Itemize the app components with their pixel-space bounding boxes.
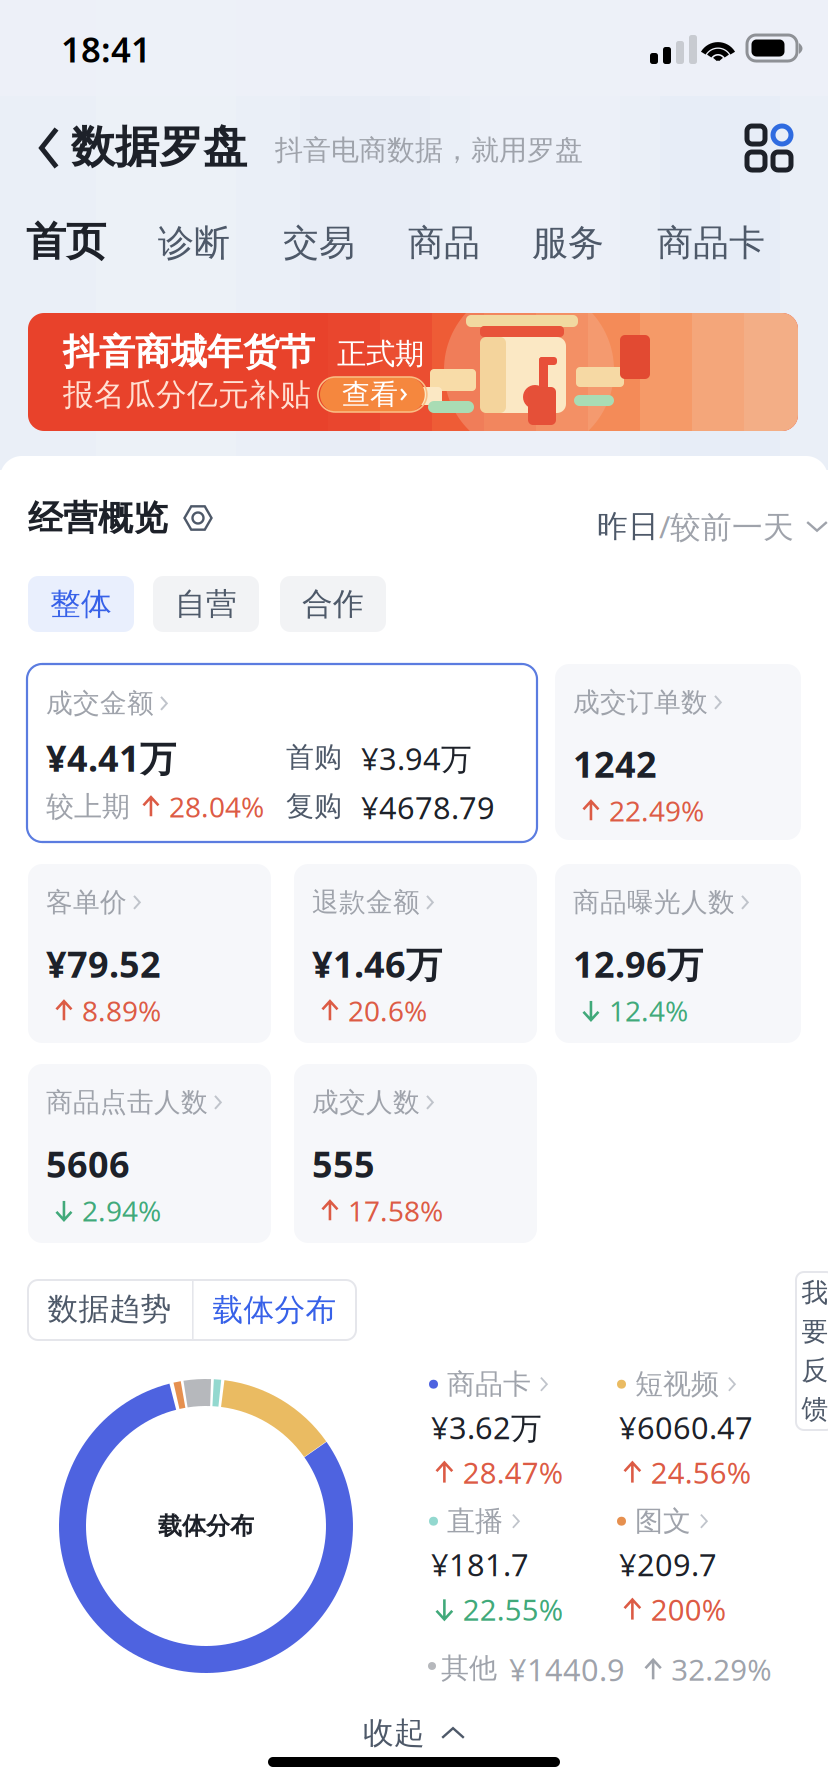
button[interactable]: 载体分布: [193, 1281, 356, 1339]
staticText: 昨日: [597, 507, 659, 545]
staticText: 12.96万: [573, 940, 703, 988]
staticText: 32.29%: [671, 1650, 771, 1689]
staticText: 载体分布: [158, 1511, 254, 1541]
button[interactable]: 诊断: [158, 207, 230, 279]
staticText: 要: [801, 1315, 828, 1348]
button[interactable]: 应用: [733, 112, 805, 184]
staticText: 查看: [342, 377, 398, 412]
button[interactable]: 成交订单数: [555, 664, 801, 840]
staticText: 合作: [302, 585, 364, 623]
button[interactable]: 首页: [26, 203, 106, 280]
staticText: 22.55%: [463, 1590, 563, 1629]
staticText: 其他: [441, 1651, 497, 1685]
staticText: 555: [312, 1140, 375, 1188]
staticText: 20.6%: [348, 992, 427, 1029]
staticText: ¥1440.9: [509, 1649, 625, 1690]
staticText: 抖音电商数据，就用罗盘: [275, 133, 583, 167]
staticText: 商品卡: [447, 1367, 531, 1401]
button[interactable]: 整体: [28, 576, 134, 632]
staticText: 退款金额: [312, 886, 420, 919]
staticText: 首购: [286, 740, 342, 774]
staticText: 诊断: [158, 221, 230, 265]
staticText: ¥4.41万: [46, 734, 176, 782]
staticText: 复购: [286, 789, 342, 823]
button[interactable]: 交易: [283, 207, 355, 279]
button[interactable]: 说明: [183, 503, 213, 533]
staticText: 直播: [447, 1504, 503, 1538]
staticText: ¥6060.47: [619, 1407, 753, 1448]
button[interactable]: 昨日: [597, 496, 828, 557]
staticText: 18:41: [61, 26, 151, 72]
staticText: 成交订单数: [573, 686, 708, 719]
button[interactable]: 成交人数: [294, 1064, 537, 1243]
staticText: 较上期: [46, 789, 130, 824]
staticText: 收起: [363, 1714, 425, 1752]
staticText: 数据趋势: [47, 1290, 171, 1328]
button[interactable]: 商品卡: [657, 207, 765, 279]
staticText: 200%: [651, 1590, 726, 1629]
button[interactable]: 客单价: [28, 864, 271, 1043]
staticText: 服务: [532, 221, 604, 265]
staticText: 成交金额: [46, 687, 154, 720]
button[interactable]: 图文: [615, 1504, 801, 1630]
staticText: 商品曝光人数: [573, 886, 735, 919]
staticText: 22.49%: [609, 792, 704, 829]
button[interactable]: 直播: [427, 1504, 613, 1630]
staticText: 首页: [26, 217, 106, 266]
staticText: 经营概览: [28, 497, 168, 540]
button[interactable]: 数据趋势: [28, 1280, 191, 1338]
button[interactable]: 商品曝光人数: [555, 864, 801, 1043]
staticText: ¥4678.79: [361, 787, 495, 828]
button[interactable]: 我: [796, 1272, 828, 1430]
staticText: 8.89%: [82, 992, 161, 1029]
staticText: 12.4%: [609, 992, 688, 1029]
staticText: 馈: [801, 1393, 828, 1426]
staticText: 成交人数: [312, 1086, 420, 1119]
button[interactable]: 收起: [264, 1700, 564, 1766]
button[interactable]: 短视频: [615, 1367, 801, 1493]
staticText: 数据罗盘: [71, 120, 247, 174]
button[interactable]: 服务: [532, 207, 604, 279]
staticText: 5606: [46, 1140, 130, 1188]
staticText: 载体分布: [212, 1291, 336, 1329]
staticText: 17.58%: [348, 1192, 443, 1229]
staticText: 客单价: [46, 886, 127, 919]
staticText: ¥79.52: [46, 940, 161, 988]
staticText: 商品: [408, 221, 480, 265]
button[interactable]: 其他: [428, 1644, 768, 1688]
button[interactable]: 抖音商城年货节: [28, 313, 798, 431]
button[interactable]: 自营: [153, 576, 259, 632]
staticText: 商品点击人数: [46, 1086, 208, 1119]
staticText: /较前一天: [659, 506, 794, 547]
staticText: 交易: [283, 221, 355, 265]
staticText: 28.04%: [169, 788, 264, 825]
button[interactable]: 返回: [18, 112, 80, 184]
staticText: ¥3.62万: [431, 1407, 542, 1448]
staticText: ¥209.7: [619, 1544, 717, 1585]
staticText: 整体: [50, 585, 112, 623]
staticText: 2.94%: [82, 1192, 161, 1229]
staticText: 自营: [175, 585, 237, 623]
staticText: 24.56%: [651, 1453, 751, 1492]
staticText: 报名瓜分亿元补贴: [63, 376, 311, 414]
button[interactable]: 合作: [280, 576, 386, 632]
staticText: 28.47%: [463, 1453, 563, 1492]
staticText: ¥1.46万: [312, 940, 442, 988]
staticText: 正式期: [337, 336, 424, 372]
staticText: 抖音商城年货节: [63, 330, 315, 374]
staticText: 反: [801, 1354, 828, 1387]
staticText: 我: [801, 1276, 828, 1309]
staticText: 短视频: [635, 1367, 719, 1401]
staticText: 1242: [573, 740, 657, 788]
staticText: ¥3.94万: [361, 738, 472, 779]
staticText: 商品卡: [657, 221, 765, 265]
staticText: 图文: [635, 1504, 691, 1538]
staticText: ¥181.7: [431, 1544, 529, 1585]
button[interactable]: 商品卡: [427, 1367, 613, 1493]
button[interactable]: 成交金额: [27, 664, 537, 842]
button[interactable]: 商品: [408, 207, 480, 279]
button[interactable]: 商品点击人数: [28, 1064, 271, 1243]
button[interactable]: 退款金额: [294, 864, 537, 1043]
